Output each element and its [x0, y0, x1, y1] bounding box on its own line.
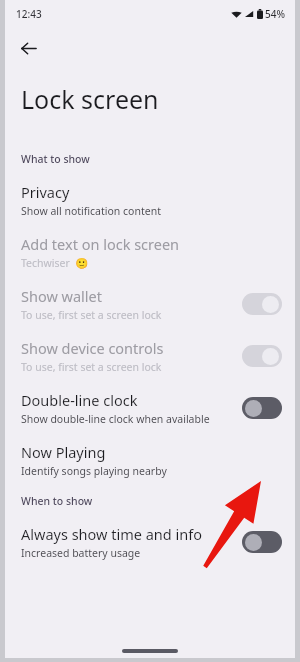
button[interactable]: Toggle Always show time and info [242, 531, 282, 553]
button[interactable]: Toggle Double-line clock [242, 397, 282, 419]
staticText: Privacy [21, 182, 70, 202]
button[interactable]: Privacy [5, 174, 295, 226]
button[interactable]: Show wallet [5, 278, 295, 330]
staticText: Increased battery usage [21, 546, 141, 560]
button[interactable]: Toggle Show device controls [242, 345, 282, 367]
staticText: Now Playing [21, 442, 106, 462]
staticText: To use, first set a screen lock [21, 360, 162, 374]
button[interactable]: Back [10, 30, 46, 66]
staticText: Identify songs playing nearby [21, 464, 167, 478]
staticText: Always show time and info [21, 524, 202, 544]
staticText: Show all notification content [21, 204, 161, 218]
staticText: To use, first set a screen lock [21, 308, 162, 322]
button[interactable]: Now Playing [5, 434, 295, 486]
staticText: Add text on lock screen [21, 234, 180, 254]
button[interactable]: Show device controls [5, 330, 295, 382]
staticText: 12:43 [16, 7, 42, 21]
staticText: 54% [265, 7, 285, 21]
staticText: When to show [21, 494, 93, 508]
button[interactable]: Add text on lock screen [5, 226, 295, 278]
staticText: Lock screen [21, 82, 159, 116]
staticText: What to show [21, 152, 90, 166]
staticText: Show double-line clock when available [21, 412, 210, 426]
staticText: Show wallet [21, 286, 102, 306]
staticText: Double-line clock [21, 390, 138, 410]
button[interactable]: Always show time and info [5, 516, 295, 568]
button[interactable]: Double-line clock [5, 382, 295, 434]
button[interactable]: Toggle Show wallet [242, 293, 282, 315]
staticText: Techwiser 🙂 [21, 256, 89, 270]
staticText: Show device controls [21, 338, 164, 358]
